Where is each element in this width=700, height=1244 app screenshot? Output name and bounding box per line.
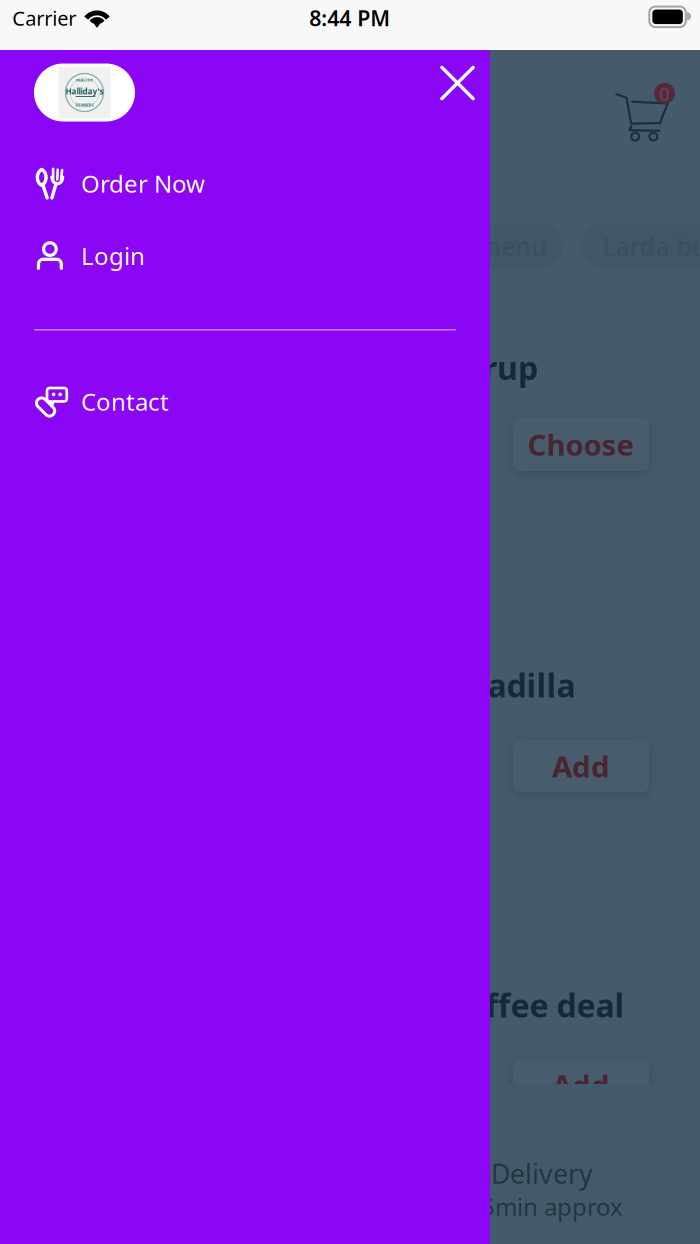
- staticText: 0: [659, 81, 670, 106]
- button[interactable]: Add: [513, 1058, 649, 1111]
- staticText: Pancakes & syrup: [258, 346, 538, 389]
- staticText: 25min approx: [467, 1191, 623, 1222]
- button[interactable]: Full menu: [411, 224, 563, 268]
- staticText: HEALTHY: [75, 77, 93, 83]
- staticText: Carrier: [12, 5, 76, 31]
- staticText: Choose: [527, 425, 634, 464]
- staticText: Coffee + another coffee deal: [174, 984, 624, 1026]
- staticText: Chicken quesadilla: [274, 664, 575, 706]
- staticText: Delivery: [491, 1156, 593, 1191]
- staticText: Larda burger: [603, 229, 700, 263]
- button[interactable]: Add: [513, 739, 649, 792]
- button[interactable]: Shopping cart: [615, 85, 681, 147]
- staticText: Full menu: [427, 229, 547, 263]
- button[interactable]: Login: [0, 226, 490, 286]
- staticText: Contact: [81, 386, 169, 417]
- button[interactable]: Order Now: [0, 153, 490, 213]
- staticText: Halliday's: [65, 86, 103, 97]
- staticText: 8:44 PM: [309, 4, 390, 32]
- staticText: Login: [81, 240, 145, 272]
- staticText: DINNERS: [75, 102, 93, 108]
- button[interactable]: Contact: [0, 371, 490, 431]
- staticText: Add: [552, 746, 610, 785]
- button[interactable]: Close menu: [429, 55, 485, 111]
- staticText: Order Now: [81, 167, 205, 199]
- staticText: Add: [552, 1065, 610, 1104]
- button[interactable]: Choose: [513, 418, 649, 471]
